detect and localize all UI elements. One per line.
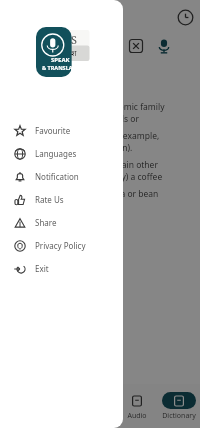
staticText: & TRANSLATE: [42, 64, 79, 71]
staticText: taxonomic family: [96, 101, 165, 113]
staticText: zo bean).: [96, 142, 133, 154]
staticText: Notification: [35, 171, 79, 182]
staticText: श: [71, 47, 77, 58]
button[interactable]: Audio: [116, 390, 158, 423]
staticText: of certain other: [96, 159, 158, 171]
staticText: Favourite: [35, 125, 71, 136]
staticText: le seeds or: [96, 113, 140, 125]
button[interactable]: Microphone: [155, 37, 173, 55]
button[interactable]: Privacy Policy: [0, 234, 123, 257]
staticText: Rate Us: [35, 194, 64, 205]
staticText: nt (for example,: [96, 130, 160, 142]
staticText: pecially) a coffee: [96, 171, 163, 183]
staticText: Share: [35, 217, 57, 228]
staticText: Privacy Policy: [35, 240, 86, 251]
staticText: S: [71, 32, 77, 44]
button[interactable]: History: [177, 9, 194, 26]
staticText: Languages: [35, 148, 77, 159]
button[interactable]: Favourite: [0, 119, 123, 142]
button[interactable]: Dictionary: [158, 390, 200, 423]
button[interactable]: Clear: [128, 38, 144, 54]
button[interactable]: Share: [0, 211, 123, 234]
staticText: Audio: [127, 411, 147, 421]
button[interactable]: Exit: [0, 257, 123, 280]
button[interactable]: Languages: [0, 142, 123, 165]
button[interactable]: Rate Us: [0, 188, 123, 211]
staticText: g a pea or bean: [96, 188, 159, 200]
button[interactable]: Notification: [0, 165, 123, 188]
staticText: SPEAK: [51, 56, 70, 64]
staticText: Exit: [35, 263, 49, 274]
staticText: Dictionary: [162, 411, 196, 421]
